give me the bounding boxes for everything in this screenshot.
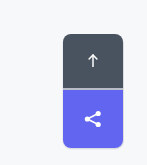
other: Share bbox=[83, 109, 103, 129]
other: Move up bbox=[84, 52, 102, 70]
button[interactable]: Move up bbox=[63, 34, 123, 88]
button[interactable]: Share bbox=[63, 90, 123, 148]
